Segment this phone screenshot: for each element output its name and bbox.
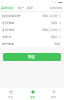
staticText: 请输入号码 [42,28,58,32]
button[interactable]: 证件号码 [0,26,64,33]
staticText: 姓名或者名称 [2,14,21,18]
staticText: 账户 [18,6,24,10]
staticText: 电子邮箱 [2,42,15,46]
staticText: 基本信息 [1,6,13,10]
staticText: 选择 [51,21,58,25]
button[interactable]: 提交 [3,53,61,61]
button[interactable]: 账户 [18,4,24,11]
staticText: 首页 [8,95,14,98]
staticText: 我的 [51,95,57,98]
staticText: 填写 [51,35,58,39]
staticText: 证件类型 [2,21,15,25]
staticText: 额度 [27,6,33,10]
button[interactable]: 业务 [22,88,43,100]
button[interactable]: 其他信息 [50,4,62,11]
button[interactable]: 基本信息 [1,4,13,11]
button[interactable]: 电子邮箱 [0,40,64,47]
staticText: 手机号 [2,35,12,39]
staticText: 业务 [30,95,36,98]
staticText: 请输入名称 [42,14,58,18]
staticText: 提交 [28,55,36,60]
button[interactable]: 姓名或者名称 [0,12,64,19]
button[interactable]: 额度 [27,4,33,11]
staticText: 证件号码 [2,28,15,32]
staticText: 选填 [54,42,61,46]
button[interactable]: 手机号 [0,33,64,40]
button[interactable]: 证件类型 [0,19,64,26]
button[interactable]: 我的 [43,88,64,100]
button[interactable]: 首页 [0,88,22,100]
staticText: 其他信息 [50,6,62,10]
